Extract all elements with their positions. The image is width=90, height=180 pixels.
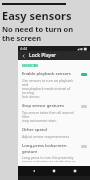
staticText: Easy sensors	[2, 8, 72, 23]
staticText: Long press to turn the proximity sensor …	[22, 155, 76, 162]
button[interactable]: Enable playback sensors	[22, 71, 87, 103]
staticText: Use sensors to turn on playback and new …	[22, 78, 79, 99]
staticText: Tap sensor twice then all around filter …	[22, 110, 79, 123]
staticText: 4:44	[20, 46, 27, 51]
button[interactable]: Back	[29, 166, 39, 176]
staticText: Enable playback sensors	[22, 71, 71, 77]
button[interactable]: Long-press lockscreen gesture	[22, 143, 87, 166]
button[interactable]: Stop sensor gestures	[81, 104, 87, 108]
staticText: Long-press lockscreen gesture	[22, 143, 79, 154]
button[interactable]: Navigate up	[20, 52, 27, 59]
staticText: Stop sensor gestures	[22, 103, 65, 109]
button[interactable]: Long-press lockscreen gesture	[81, 144, 87, 148]
button[interactable]: Home	[49, 166, 59, 176]
staticText: SENSORS	[22, 63, 39, 68]
staticText: Lock Player	[29, 52, 57, 59]
staticText: Adjust sensor responsiveness.	[22, 134, 70, 139]
button[interactable]: Enable playback sensors	[81, 72, 87, 76]
button[interactable]: Other speed	[22, 127, 87, 143]
staticText: Other speed	[22, 127, 47, 133]
staticText: No need to turn on the screen	[2, 24, 74, 43]
button[interactable]: Stop sensor gestures	[22, 103, 87, 127]
button[interactable]: Recents	[70, 166, 80, 176]
